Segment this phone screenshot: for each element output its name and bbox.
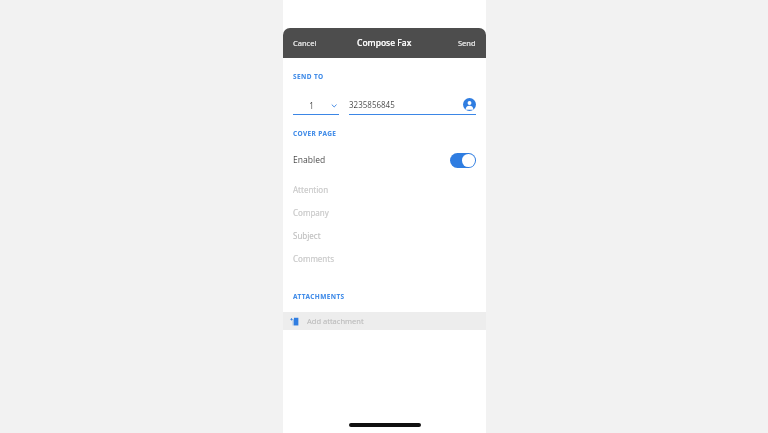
staticText: Comments <box>293 253 335 264</box>
staticText: Cancel <box>293 38 317 48</box>
staticText: Add attachment <box>307 316 364 326</box>
button[interactable]: Company <box>283 201 486 224</box>
button[interactable]: Attention <box>283 178 486 201</box>
staticText: Subject <box>293 230 321 241</box>
button[interactable]: Subject <box>283 224 486 247</box>
button[interactable]: Add attachment <box>283 312 486 330</box>
staticText: 1 <box>293 100 330 111</box>
button[interactable]: 3235856845 <box>349 98 476 115</box>
staticText: SEND TO <box>293 72 324 81</box>
staticText: 3235856845 <box>349 99 463 110</box>
button[interactable]: Comments <box>283 247 486 270</box>
button[interactable]: 1 <box>293 100 339 115</box>
button[interactable]: Cancel <box>287 33 323 53</box>
button[interactable]: Enabled <box>283 149 486 171</box>
staticText: Compose Fax <box>357 37 412 49</box>
button[interactable]: Choose contact <box>463 98 476 111</box>
button[interactable]: Send <box>452 33 482 53</box>
staticText: ATTACHMENTS <box>293 292 345 301</box>
button[interactable]: Cover page enabled <box>450 153 476 168</box>
staticText: COVER PAGE <box>293 129 337 138</box>
staticText: Attention <box>293 184 329 195</box>
staticText: Enabled <box>293 154 450 166</box>
staticText: Company <box>293 207 329 218</box>
staticText: Send <box>458 38 476 48</box>
